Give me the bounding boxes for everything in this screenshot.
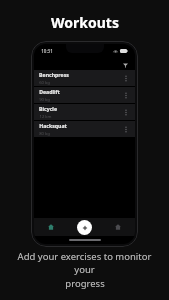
staticText: Workouts bbox=[51, 13, 119, 32]
staticText: 80 kg bbox=[39, 131, 50, 137]
button[interactable]: More options bbox=[122, 74, 130, 82]
staticText: progress bbox=[65, 277, 105, 290]
button[interactable]: More options bbox=[122, 125, 130, 133]
staticText: 60 kg bbox=[39, 80, 50, 86]
button[interactable]: More options bbox=[122, 91, 130, 99]
button[interactable]: Benchpress bbox=[34, 70, 135, 86]
staticText: Deadlift bbox=[39, 88, 60, 95]
staticText: Bicycle bbox=[39, 105, 57, 112]
staticText: 12 km bbox=[39, 114, 52, 120]
button[interactable]: More options bbox=[122, 108, 130, 116]
staticText: Add your exercises to monitor your bbox=[10, 250, 159, 276]
button[interactable]: Hacksquat bbox=[34, 121, 135, 137]
staticText: 90 kg bbox=[39, 97, 50, 103]
staticText: Hacksquat bbox=[39, 122, 67, 129]
button[interactable]: Deadlift bbox=[34, 87, 135, 103]
staticText: 10:31 bbox=[41, 48, 53, 54]
button[interactable]: Bicycle bbox=[34, 104, 135, 120]
button[interactable]: Add workout bbox=[77, 220, 92, 235]
button[interactable]: Home bbox=[34, 218, 67, 236]
button[interactable]: Profile bbox=[101, 218, 135, 236]
button[interactable]: Filter bbox=[121, 61, 129, 69]
staticText: Benchpress bbox=[39, 71, 69, 78]
